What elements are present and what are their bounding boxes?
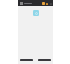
button[interactable]: Feature tile [33, 10, 39, 16]
button[interactable]: Navigation menu [19, 1, 23, 5]
button[interactable]: Secondary action [38, 59, 51, 61]
button[interactable]: Primary action [20, 59, 33, 61]
button[interactable]: More options [49, 2, 52, 5]
button[interactable]: Account [42, 2, 48, 5]
